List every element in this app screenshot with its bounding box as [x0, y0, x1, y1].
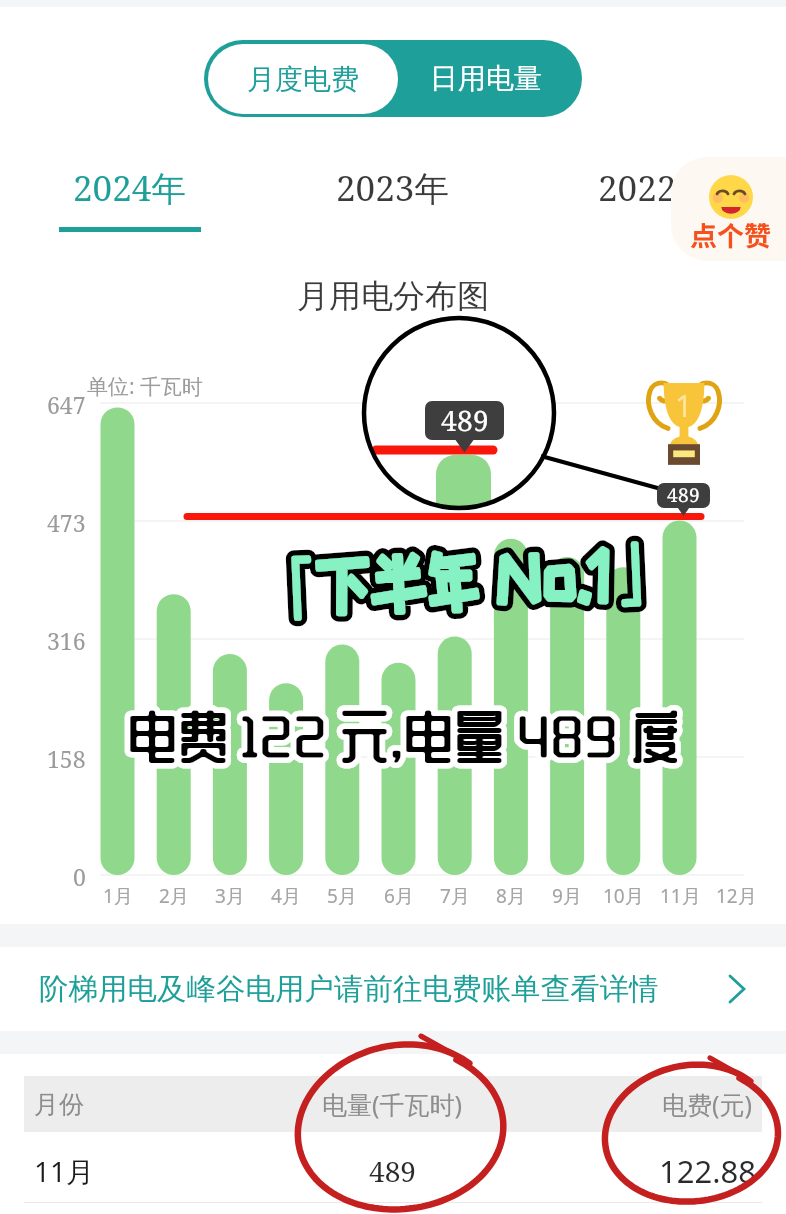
staticText: 6月 [384, 883, 414, 909]
button[interactable]: 2022年 [555, 164, 755, 249]
button[interactable]: 点个赞 Like [671, 157, 786, 261]
staticText: 电量(千瓦时) [322, 1087, 463, 1121]
staticText: 7月 [440, 883, 470, 909]
button[interactable]: 2024年 [30, 164, 230, 249]
staticText: 阶梯用电及峰谷电用户请前往电费账单查看详情 [39, 971, 659, 1008]
staticText: 9月 [552, 883, 582, 909]
staticText: 316 [47, 625, 86, 656]
staticText: 647 [47, 389, 86, 420]
button[interactable]: 2023年 [293, 164, 493, 249]
button[interactable] [0, 1140, 786, 1202]
staticText: 158 [47, 743, 86, 774]
button[interactable]: 日用电量 [389, 40, 582, 117]
staticText: 10月 [603, 883, 644, 909]
staticText: 3月 [215, 883, 245, 909]
staticText: 11月 [34, 1152, 95, 1190]
button[interactable]: 阶梯用电及峰谷电用户请前往电费账单查看详情 [0, 947, 786, 1031]
staticText: 1月 [103, 883, 133, 909]
staticText: 月用电分布图 [297, 276, 489, 316]
staticText: 489 [369, 1152, 416, 1190]
staticText: 2月 [159, 883, 189, 909]
staticText: 单位: 千瓦时 [87, 372, 204, 401]
staticText: 12月 [716, 883, 757, 909]
other: 查看详情 [730, 976, 744, 1002]
button[interactable]: 月度电费 [208, 44, 398, 114]
staticText: 月度电费 [247, 62, 359, 97]
staticText: 月份 [34, 1089, 84, 1120]
staticText: 4月 [271, 883, 301, 909]
staticText: 122.88 [659, 1150, 756, 1192]
staticText: 2024年 [73, 164, 187, 212]
staticText: 473 [47, 507, 86, 538]
staticText: 5月 [327, 883, 357, 909]
staticText: 2022年 [598, 164, 712, 212]
staticText: 电费(元) [662, 1087, 753, 1121]
staticText: 8月 [496, 883, 526, 909]
staticText: 日用电量 [430, 61, 542, 96]
staticText: 2023年 [336, 164, 450, 212]
staticText: 11月 [660, 883, 701, 909]
staticText: 0 [73, 861, 86, 892]
